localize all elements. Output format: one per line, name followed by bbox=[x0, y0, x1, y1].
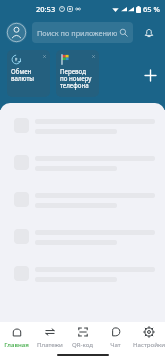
button[interactable]: Настройки bbox=[132, 322, 165, 352]
button[interactable]: Notifications bbox=[138, 22, 159, 43]
staticText: 20:53 bbox=[36, 4, 56, 14]
staticText: Обмен валюты bbox=[11, 67, 35, 83]
staticText: QR-код bbox=[72, 340, 93, 348]
button[interactable]: Чат bbox=[99, 322, 132, 352]
staticText: Поиск по приложению bbox=[37, 28, 118, 38]
staticText: Перевод по номеру телефона bbox=[60, 67, 92, 90]
button[interactable]: Add shortcut bbox=[141, 66, 159, 84]
button[interactable]: Поиск по приложению bbox=[32, 22, 133, 43]
staticText: Главная bbox=[4, 340, 29, 348]
button[interactable]: Платежи bbox=[33, 322, 66, 352]
staticText: Чат bbox=[110, 340, 121, 348]
staticText: Платежи bbox=[37, 340, 63, 348]
staticText: Настройки bbox=[133, 340, 165, 348]
staticText: 65 % bbox=[143, 4, 160, 14]
button[interactable]: Перевод по номеру телефона bbox=[56, 50, 99, 97]
button[interactable]: Profile bbox=[6, 22, 27, 43]
button[interactable]: Обмен валюты bbox=[7, 50, 50, 97]
button[interactable]: Главная bbox=[0, 322, 33, 352]
button[interactable]: QR-код bbox=[66, 322, 99, 352]
